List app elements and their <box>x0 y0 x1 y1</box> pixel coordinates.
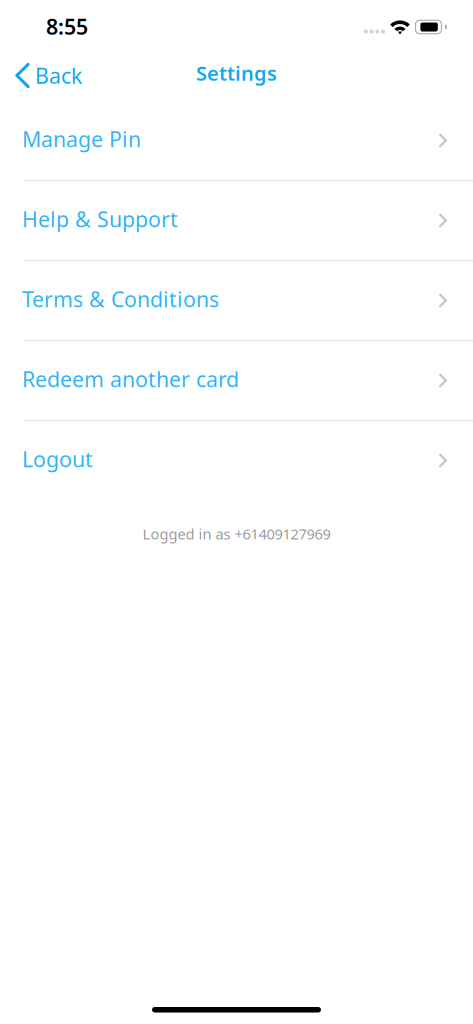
staticText: Help & Support <box>22 205 178 233</box>
button[interactable]: Help & Support <box>0 181 473 261</box>
staticText: Redeem another card <box>22 365 239 393</box>
button[interactable]: Back <box>0 53 94 97</box>
staticText: Settings <box>196 60 277 86</box>
staticText: Terms & Conditions <box>22 285 219 313</box>
button[interactable]: Redeem another card <box>0 341 473 421</box>
button[interactable]: Manage Pin <box>0 101 473 181</box>
staticText: Back <box>35 61 82 90</box>
button[interactable]: Logout <box>0 421 473 501</box>
button[interactable]: Terms & Conditions <box>0 261 473 341</box>
staticText: Manage Pin <box>22 125 141 153</box>
staticText: Logged in as +61409127969 <box>142 524 330 543</box>
staticText: Logout <box>22 445 93 473</box>
staticText: 8:55 <box>46 12 88 41</box>
